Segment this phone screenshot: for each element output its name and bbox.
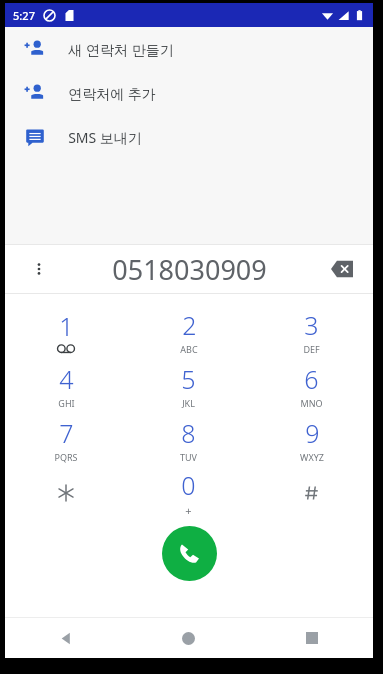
- staticText: 1: [59, 309, 74, 343]
- button[interactable]: SMS 보내기: [5, 115, 373, 159]
- button[interactable]: 0: [127, 466, 250, 520]
- staticText: 5: [181, 362, 196, 396]
- staticText: 0518030909: [112, 251, 267, 288]
- button[interactable]: 5: [127, 358, 250, 412]
- staticText: 7: [59, 416, 74, 450]
- button[interactable]: Home: [127, 618, 250, 658]
- button[interactable]: 6: [250, 358, 373, 412]
- button[interactable]: 새 연락처 만들기: [5, 27, 373, 71]
- staticText: MNO: [300, 397, 323, 409]
- staticText: TUV: [180, 451, 197, 463]
- staticText: 새 연락처 만들기: [68, 40, 174, 59]
- button[interactable]: 1: [5, 304, 127, 358]
- staticText: DEF: [303, 343, 320, 355]
- button[interactable]: [250, 466, 373, 520]
- staticText: 연락처에 추가: [68, 84, 156, 103]
- button[interactable]: 2: [127, 304, 250, 358]
- staticText: 6: [304, 362, 319, 396]
- staticText: +: [185, 503, 192, 518]
- staticText: ABC: [180, 343, 198, 355]
- staticText: 8: [181, 416, 196, 450]
- staticText: 4: [59, 362, 74, 396]
- staticText: 2: [182, 308, 197, 342]
- staticText: 9: [305, 416, 320, 450]
- button[interactable]: Recents: [250, 618, 373, 658]
- button[interactable]: Call: [162, 526, 217, 581]
- button[interactable]: 7: [5, 412, 127, 466]
- staticText: WXYZ: [300, 451, 324, 463]
- staticText: JKL: [182, 397, 195, 409]
- staticText: PQRS: [54, 451, 78, 463]
- staticText: 5:27: [13, 8, 35, 23]
- staticText: GHI: [58, 397, 75, 409]
- button[interactable]: Back: [5, 618, 127, 658]
- button[interactable]: More options: [25, 255, 53, 283]
- button[interactable]: 9: [250, 412, 373, 466]
- staticText: 3: [304, 308, 319, 342]
- button[interactable]: 연락처에 추가: [5, 71, 373, 115]
- button[interactable]: 8: [127, 412, 250, 466]
- staticText: SMS 보내기: [68, 128, 142, 147]
- button[interactable]: 4: [5, 358, 127, 412]
- button[interactable]: Backspace: [325, 252, 359, 286]
- button[interactable]: [5, 466, 127, 520]
- button[interactable]: 3: [250, 304, 373, 358]
- staticText: 0: [181, 468, 196, 502]
